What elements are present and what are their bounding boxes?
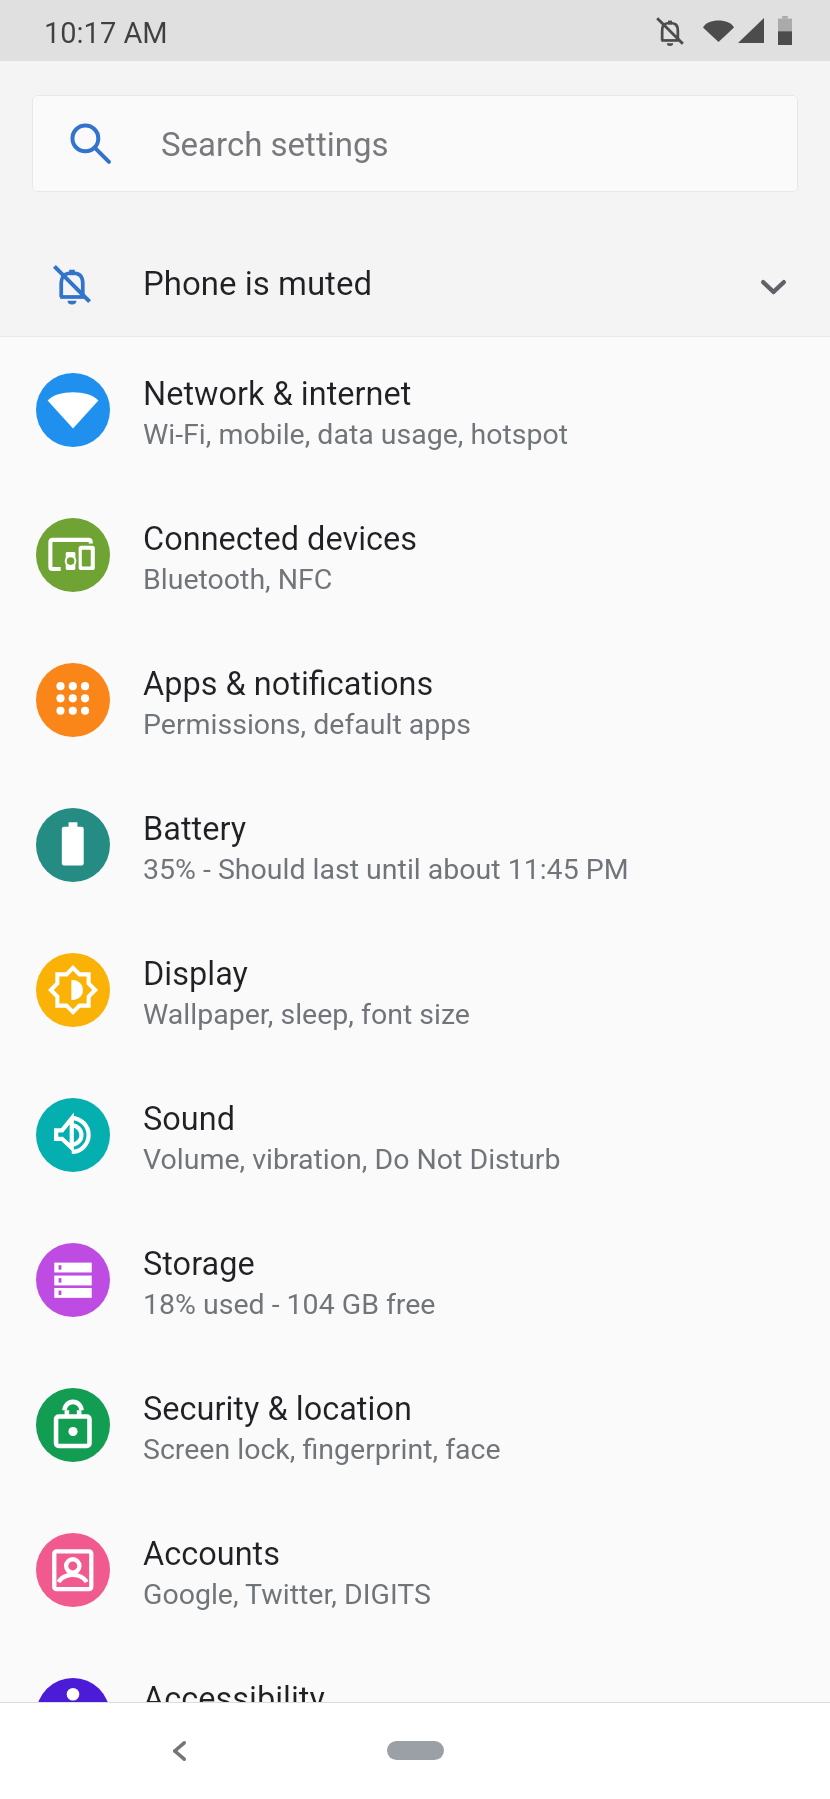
staticText: Display — [143, 955, 248, 993]
staticText: Phone is muted — [143, 264, 373, 303]
staticText: 35% - Should last until about 11:45 PM — [143, 853, 629, 886]
staticText: Screen lock, fingerprint, face — [143, 1433, 501, 1466]
button[interactable]: Back — [147, 1718, 212, 1783]
button[interactable]: Battery — [0, 773, 830, 917]
staticText: Accessibility — [143, 1680, 325, 1718]
staticText: Google, Twitter, DIGITS — [143, 1578, 431, 1611]
staticText: Apps & notifications — [143, 665, 434, 703]
button[interactable]: Connected devices — [0, 483, 830, 627]
staticText: Volume, vibration, Do Not Disturb — [143, 1143, 561, 1176]
staticText: Network & internet — [143, 375, 412, 413]
staticText: Accounts — [143, 1535, 281, 1573]
button[interactable]: Accounts — [0, 1498, 830, 1642]
button[interactable]: Phone is muted — [0, 240, 830, 328]
staticText: Wi-Fi, mobile, data usage, hotspot — [143, 418, 569, 451]
button[interactable]: Security & location — [0, 1353, 830, 1497]
button[interactable]: Network & internet — [0, 338, 830, 482]
button[interactable]: Storage — [0, 1208, 830, 1352]
staticText: Security & location — [143, 1390, 412, 1428]
staticText: 18% used - 104 GB free — [143, 1288, 436, 1321]
staticText: Connected devices — [143, 520, 418, 558]
staticText: Permissions, default apps — [143, 708, 472, 741]
staticText: 10:17 AM — [44, 16, 168, 50]
staticText: Wallpaper, sleep, font size — [143, 998, 470, 1031]
staticText: Bluetooth, NFC — [143, 563, 333, 596]
button[interactable]: Display — [0, 918, 830, 1062]
button[interactable]: Expand — [745, 259, 801, 315]
button[interactable]: Home — [387, 1741, 444, 1760]
button[interactable]: Accessibility — [0, 1643, 830, 1787]
staticText: Search settings — [161, 125, 389, 164]
staticText: Storage — [143, 1245, 255, 1283]
staticText: Battery — [143, 810, 247, 848]
button[interactable]: Search settings — [32, 95, 798, 192]
button[interactable]: Sound — [0, 1063, 830, 1207]
button[interactable]: Apps & notifications — [0, 628, 830, 772]
staticText: Screen readers, display, interaction con… — [143, 1723, 692, 1756]
staticText: Sound — [143, 1100, 236, 1138]
